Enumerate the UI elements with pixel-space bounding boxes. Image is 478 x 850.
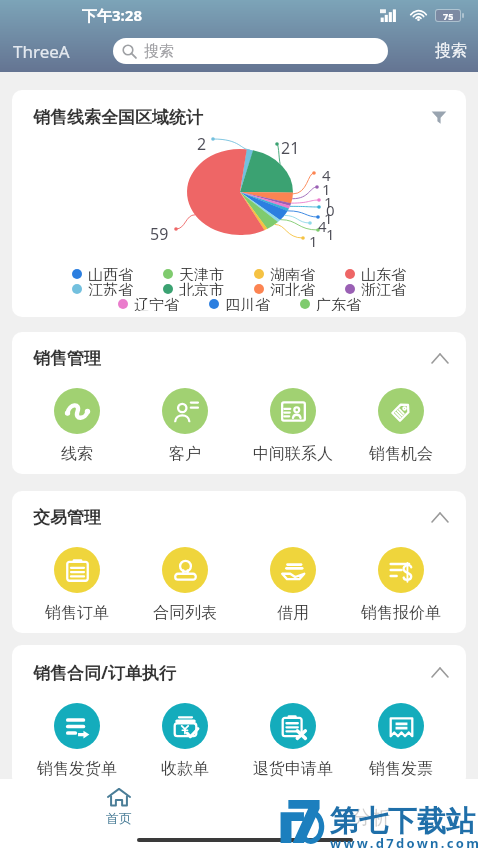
staticText: 天津市 [179, 266, 224, 281]
staticText: 湖南省 [270, 266, 315, 281]
button[interactable]: 筛选 [428, 106, 450, 128]
staticText: 中间联系人 [253, 444, 333, 464]
staticText: 1 [324, 208, 333, 228]
button[interactable]: 客户 [131, 388, 239, 464]
button[interactable]: 销售发票 [347, 703, 455, 779]
staticText: 退货申请单 [253, 759, 333, 779]
button[interactable]: 销售机会 [347, 388, 455, 464]
button[interactable]: 借用 [239, 547, 347, 623]
staticText: 销售订单 [45, 603, 109, 623]
staticText: 搜索 [144, 42, 174, 61]
staticText: 销售报价单 [361, 603, 441, 623]
staticText: 北京市 [179, 281, 224, 296]
staticText: 1 [326, 224, 335, 244]
staticText: 21 [281, 137, 300, 159]
staticText: 搜索 [435, 41, 467, 61]
staticText: 1 [322, 179, 331, 199]
staticText: 销售合同/订单执行 [33, 661, 177, 684]
button[interactable]: 退货申请单 [239, 703, 347, 779]
staticText: 销售管理 [33, 348, 101, 369]
button[interactable]: 销售发货单 [23, 703, 131, 779]
staticText: 广东省 [316, 296, 361, 311]
staticText: 首页 [106, 810, 132, 826]
staticText: 4 [322, 165, 331, 185]
button[interactable]: 中间联系人 [239, 388, 347, 464]
staticText: 59 [150, 223, 169, 245]
staticText: 借用 [277, 603, 309, 623]
staticText: 分析 [352, 806, 390, 830]
staticText: 销售线索全国区域统计 [33, 107, 203, 128]
staticText: 山西省 [88, 266, 133, 281]
button[interactable]: 销售报价单 [347, 547, 455, 623]
staticText: 江苏省 [88, 281, 133, 296]
staticText: 山东省 [361, 266, 406, 281]
staticText: 四川省 [225, 296, 270, 311]
staticText: 下午3:28 [82, 5, 142, 25]
staticText: 第七下载站 [330, 803, 475, 840]
staticText: 交易管理 [33, 507, 101, 528]
staticText: ThreeA [13, 40, 70, 63]
staticText: 辽宁省 [134, 296, 179, 311]
staticText: 线索 [61, 444, 93, 464]
button[interactable]: 交易管理 [12, 491, 466, 530]
staticText: www.d7down.com [330, 834, 478, 850]
button[interactable]: 销售管理 [12, 332, 466, 371]
button[interactable]: 搜索 [432, 41, 470, 61]
staticText: 客户 [169, 444, 201, 464]
button[interactable]: 首页 [69, 788, 169, 829]
staticText: 收款单 [161, 759, 209, 779]
staticText: 0 [326, 200, 335, 220]
staticText: 合同列表 [153, 603, 217, 623]
staticText: 1 [324, 192, 333, 212]
staticText: 河北省 [270, 281, 315, 296]
button[interactable]: 收款单 [131, 703, 239, 779]
button[interactable]: 线索 [23, 388, 131, 464]
staticText: 2 [197, 133, 207, 155]
button[interactable]: 合同列表 [131, 547, 239, 623]
button[interactable]: 搜索 [113, 38, 388, 64]
staticText: 1 [309, 231, 318, 251]
staticText: 浙江省 [361, 281, 406, 296]
button[interactable]: 销售订单 [23, 547, 131, 623]
staticText: 4 [318, 216, 327, 236]
staticText: 75 [443, 10, 454, 21]
staticText: 销售发货单 [37, 759, 117, 779]
staticText: 销售发票 [369, 759, 433, 779]
staticText: 销售机会 [369, 444, 433, 464]
button[interactable]: 销售合同/订单执行 [12, 645, 466, 686]
